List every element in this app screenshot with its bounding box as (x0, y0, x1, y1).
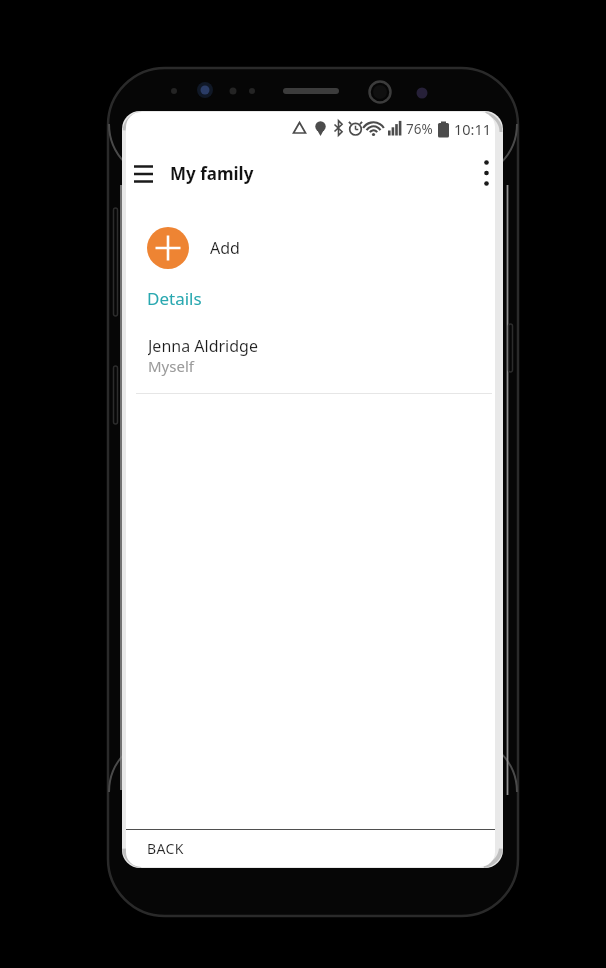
staticText: 10:11 (454, 119, 492, 139)
button[interactable] (478, 158, 494, 188)
button[interactable]: BACK (126, 830, 495, 867)
staticText: Details (147, 287, 202, 310)
button[interactable]: Jenna Aldridge (126, 335, 495, 394)
staticText: Add (210, 237, 240, 259)
button[interactable] (134, 165, 153, 183)
staticText: Jenna Aldridge (148, 335, 258, 356)
staticText: BACK (147, 839, 184, 858)
staticText: My family (170, 162, 254, 185)
staticText: Myself (148, 356, 194, 376)
button[interactable]: Add (147, 227, 240, 269)
staticText: 76% (406, 120, 433, 138)
